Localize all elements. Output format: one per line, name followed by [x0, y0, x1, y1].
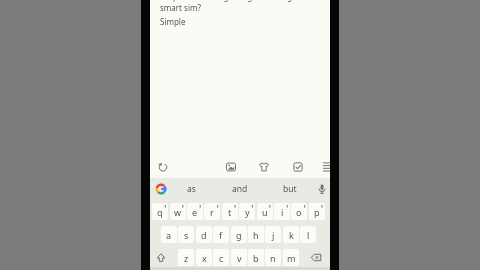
staticText: w: [174, 206, 182, 218]
button[interactable]: z: [178, 249, 194, 266]
staticText: u: [262, 206, 268, 218]
button[interactable]: l: [300, 226, 316, 243]
staticText: e: [192, 206, 198, 218]
staticText: but: [283, 183, 297, 195]
staticText: l: [307, 229, 310, 241]
button[interactable]: m: [283, 249, 299, 266]
button[interactable]: h: [248, 226, 264, 243]
staticText: n: [270, 252, 276, 264]
staticText: s: [184, 229, 189, 241]
staticText: and: [232, 183, 248, 195]
button[interactable]: [224, 160, 238, 174]
button[interactable]: o: [291, 203, 307, 220]
staticText: y: [245, 206, 250, 218]
button[interactable]: [291, 160, 305, 174]
staticText: t: [228, 206, 232, 218]
staticText: x: [202, 252, 207, 264]
button[interactable]: b: [248, 249, 264, 266]
button[interactable]: and: [220, 179, 260, 199]
button[interactable]: [315, 182, 329, 196]
staticText: i: [281, 206, 284, 218]
button[interactable]: but: [270, 179, 310, 199]
staticText: v: [237, 252, 242, 264]
staticText: g: [236, 229, 242, 241]
staticText: b: [253, 252, 259, 264]
staticText: k: [289, 229, 294, 241]
staticText: z: [184, 252, 189, 264]
button[interactable]: u: [257, 203, 273, 220]
staticText: is it possible to register gcash using a: [158, 0, 299, 2]
staticText: a: [166, 229, 172, 241]
staticText: h: [253, 229, 259, 241]
staticText: p: [314, 206, 320, 218]
button[interactable]: p: [309, 203, 325, 220]
button[interactable]: [308, 249, 324, 266]
button[interactable]: [257, 160, 271, 174]
button[interactable]: k: [283, 226, 299, 243]
staticText: c: [219, 252, 224, 264]
staticText: d: [201, 229, 207, 241]
staticText: j: [272, 229, 275, 241]
staticText: smart sim?: [160, 2, 201, 13]
button[interactable]: w: [170, 203, 186, 220]
button[interactable]: [154, 182, 168, 196]
staticText: q: [157, 206, 163, 218]
staticText: m: [287, 252, 296, 264]
button[interactable]: d: [196, 226, 212, 243]
button[interactable]: v: [231, 249, 247, 266]
button[interactable]: j: [265, 226, 281, 243]
staticText: Simple: [160, 16, 186, 27]
button[interactable]: g: [231, 226, 247, 243]
button[interactable]: a: [161, 226, 177, 243]
button[interactable]: as: [171, 179, 211, 199]
staticText: f: [219, 229, 223, 241]
button[interactable]: t: [222, 203, 238, 220]
button[interactable]: s: [178, 226, 194, 243]
button[interactable]: n: [265, 249, 281, 266]
staticText: as: [187, 183, 196, 195]
button[interactable]: e: [187, 203, 203, 220]
staticText: r: [210, 206, 214, 218]
button[interactable]: [153, 249, 169, 266]
button[interactable]: i: [274, 203, 290, 220]
button[interactable]: r: [204, 203, 220, 220]
button[interactable]: q: [152, 203, 168, 220]
button[interactable]: c: [213, 249, 229, 266]
button[interactable]: y: [239, 203, 255, 220]
button[interactable]: [156, 160, 170, 174]
button[interactable]: [320, 160, 330, 174]
staticText: o: [296, 206, 302, 218]
button[interactable]: f: [213, 226, 229, 243]
button[interactable]: x: [196, 249, 212, 266]
